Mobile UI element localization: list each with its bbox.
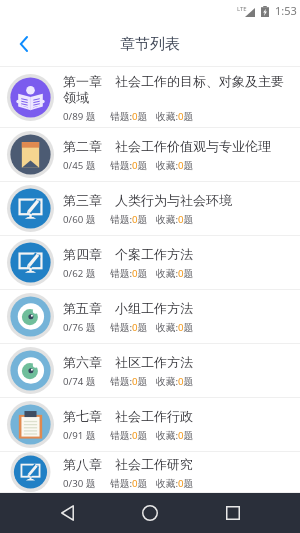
button[interactable]: 第六章 社区工作方法 bbox=[0, 344, 300, 398]
staticText: 0/60 题 bbox=[63, 213, 96, 226]
button[interactable]: Back bbox=[43, 493, 91, 533]
staticText: 错题:0题 bbox=[110, 477, 148, 490]
staticText: 收藏:0题 bbox=[156, 267, 194, 280]
staticText: 0/89 题 bbox=[63, 110, 96, 123]
staticText: 0/62 题 bbox=[63, 267, 96, 280]
staticText: 0/76 题 bbox=[63, 321, 96, 334]
staticText: 1:53 bbox=[275, 3, 297, 18]
staticText: 收藏:0题 bbox=[156, 110, 194, 123]
staticText: 章节列表 bbox=[120, 35, 180, 54]
staticText: 第二章 社会工作价值观与专业伦理 bbox=[63, 137, 271, 155]
staticText: 错题:0题 bbox=[110, 159, 148, 172]
staticText: 收藏:0题 bbox=[156, 213, 194, 226]
button[interactable]: Back bbox=[8, 28, 40, 60]
staticText: 第七章 社会工作行政 bbox=[63, 407, 193, 425]
staticText: 收藏:0题 bbox=[156, 477, 194, 490]
staticText: 第五章 小组工作方法 bbox=[63, 299, 193, 317]
staticText: 收藏:0题 bbox=[156, 429, 194, 442]
staticText: 收藏:0题 bbox=[156, 321, 194, 334]
staticText: 错题:0题 bbox=[110, 267, 148, 280]
staticText: 0/30 题 bbox=[63, 477, 96, 490]
button[interactable]: 第五章 小组工作方法 bbox=[0, 290, 300, 344]
staticText: 0/91 题 bbox=[63, 429, 96, 442]
button[interactable]: Home bbox=[126, 493, 174, 533]
staticText: 错题:0题 bbox=[110, 110, 148, 123]
staticText: 错题:0题 bbox=[110, 321, 148, 334]
staticText: 第四章 个案工作方法 bbox=[63, 245, 193, 263]
staticText: 收藏:0题 bbox=[156, 159, 194, 172]
staticText: 第一章 社会工作的目标、对象及主要领域 bbox=[63, 72, 292, 106]
staticText: 0/74 题 bbox=[63, 375, 96, 388]
staticText: LTE bbox=[237, 5, 247, 13]
staticText: 第三章 人类行为与社会环境 bbox=[63, 191, 232, 209]
button[interactable]: 第三章 人类行为与社会环境 bbox=[0, 182, 300, 236]
button[interactable]: 第二章 社会工作价值观与专业伦理 bbox=[0, 128, 300, 182]
staticText: 错题:0题 bbox=[110, 375, 148, 388]
staticText: 0/45 题 bbox=[63, 159, 96, 172]
staticText: 第六章 社区工作方法 bbox=[63, 353, 193, 371]
button[interactable]: 第四章 个案工作方法 bbox=[0, 236, 300, 290]
button[interactable]: 第七章 社会工作行政 bbox=[0, 398, 300, 452]
staticText: 收藏:0题 bbox=[156, 375, 194, 388]
button[interactable]: 第八章 社会工作研究 bbox=[0, 452, 300, 493]
staticText: 错题:0题 bbox=[110, 429, 148, 442]
staticText: 错题:0题 bbox=[110, 213, 148, 226]
button[interactable]: 第一章 社会工作的目标、对象及主要领域 bbox=[0, 67, 300, 128]
staticText: 第八章 社会工作研究 bbox=[63, 455, 193, 473]
button[interactable]: Recents bbox=[209, 493, 257, 533]
